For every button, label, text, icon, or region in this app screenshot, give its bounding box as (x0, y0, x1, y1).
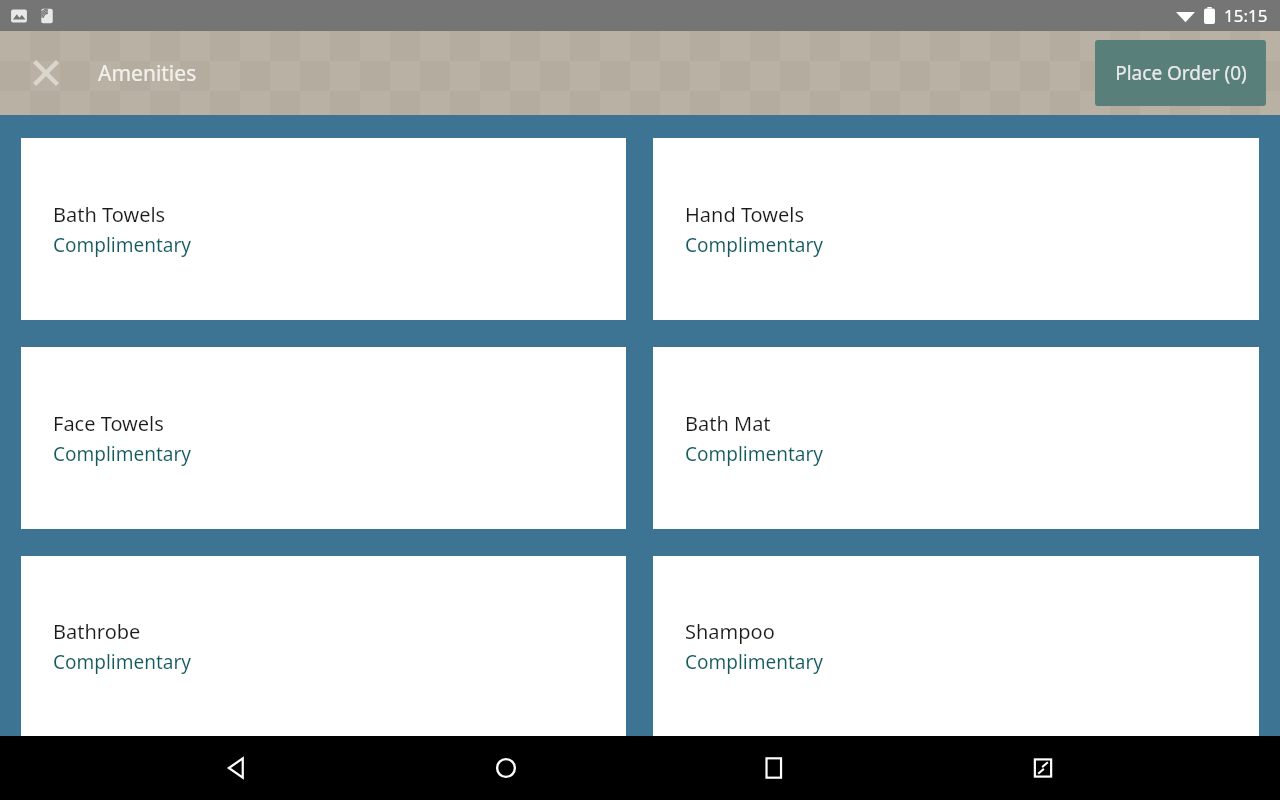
staticText: Complimentary (53, 649, 192, 675)
button[interactable]: Face Towels (21, 347, 626, 529)
button[interactable]: Back (205, 736, 269, 800)
staticText: Bath Towels (53, 201, 166, 228)
staticText: Amenities (98, 59, 197, 88)
staticText: Complimentary (685, 232, 824, 258)
staticText: Place Order (0) (1115, 60, 1247, 86)
button[interactable]: Bathrobe (21, 556, 626, 736)
staticText: Face Towels (53, 410, 164, 437)
button[interactable]: Home (474, 736, 538, 800)
staticText: Hand Towels (685, 201, 805, 228)
button[interactable]: Close (20, 47, 72, 99)
staticText: Complimentary (685, 649, 824, 675)
button[interactable]: Bath Mat (653, 347, 1259, 529)
staticText: 15:15 (1224, 4, 1268, 27)
staticText: Complimentary (685, 441, 824, 467)
button[interactable]: Resize window (1011, 736, 1075, 800)
staticText: Bath Mat (685, 410, 771, 437)
button[interactable]: Shampoo (653, 556, 1259, 736)
button[interactable]: Hand Towels (653, 138, 1259, 320)
staticText: Complimentary (53, 232, 192, 258)
button[interactable]: Bath Towels (21, 138, 626, 320)
staticText: Bathrobe (53, 618, 141, 645)
button[interactable]: Recent apps (742, 736, 806, 800)
staticText: Shampoo (685, 618, 775, 645)
button[interactable]: Place Order (0) (1095, 40, 1266, 106)
staticText: Complimentary (53, 441, 192, 467)
